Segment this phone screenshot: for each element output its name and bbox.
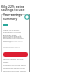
- staticText: Kilg 22% extra savings to use: [1, 4, 31, 12]
- staticText: Your savings summary: [3, 13, 24, 21]
- staticText: Contact us if you have questions about y…: [3, 64, 28, 72]
- staticText: name@email.com: [3, 40, 23, 43]
- staticText: Here is a short summary of the savings y…: [3, 28, 24, 43]
- staticText: Reference 2214: [3, 46, 23, 49]
- button[interactable]: [3, 52, 28, 57]
- button[interactable]: Brand logo: [24, 14, 30, 20]
- staticText: Terms apply to this offer.: [3, 58, 25, 64]
- staticText: Account details: [3, 35, 23, 39]
